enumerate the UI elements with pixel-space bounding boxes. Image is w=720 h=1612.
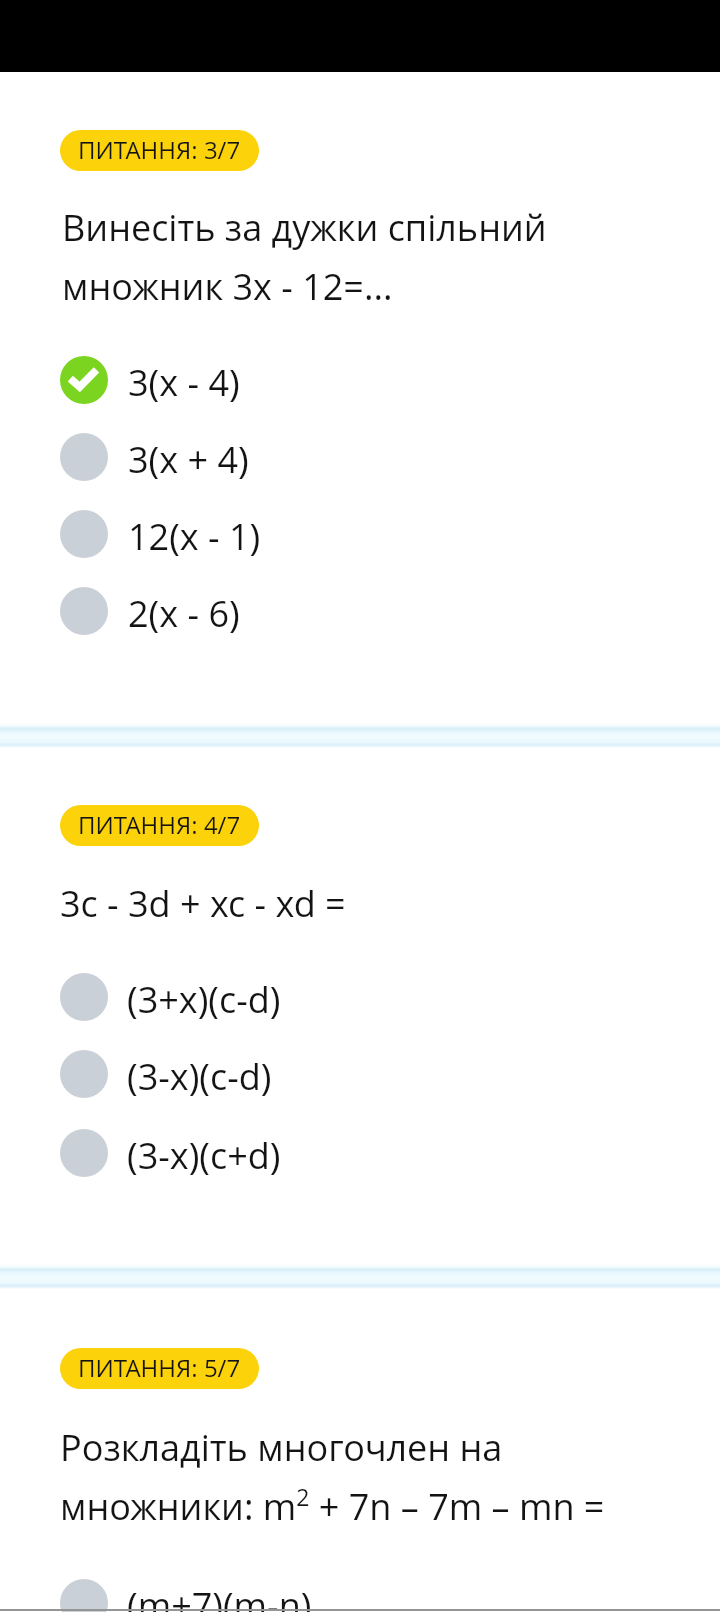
button[interactable]: Correct answer (0, 343, 720, 417)
staticText: ПИТАННЯ: 4/7 (78, 808, 241, 841)
staticText: ПИТАННЯ: 5/7 (78, 1351, 241, 1384)
staticText: Винесіть за дужки спільний множник 3x - … (62, 203, 562, 310)
other: Select answer (60, 510, 108, 558)
button[interactable]: Select answer (0, 420, 720, 494)
staticText: (3+x)(c-d) (127, 975, 281, 1024)
staticText: ПИТАННЯ: 3/7 (78, 133, 241, 166)
other: Select answer (60, 433, 108, 481)
other: Select answer (60, 1050, 108, 1098)
staticText: множники: m2 + 7n – 7m – mn = (60, 1481, 700, 1530)
button[interactable]: Select answer (0, 1116, 720, 1190)
staticText: Розкладіть многочлен на (60, 1423, 700, 1472)
button[interactable]: Select answer (0, 1037, 720, 1111)
staticText: 3c - 3d + xc - xd = (60, 879, 700, 928)
staticText: 3(x + 4) (128, 435, 249, 484)
staticText: (3-x)(c+d) (127, 1131, 281, 1180)
button[interactable]: Select answer (0, 574, 720, 648)
other: Select answer (60, 587, 108, 635)
button[interactable]: Select answer (0, 960, 720, 1034)
other: Select answer (60, 1129, 108, 1177)
staticText: (3-x)(c-d) (127, 1052, 272, 1101)
button[interactable]: ПИТАННЯ: 5/7 (60, 1348, 259, 1389)
staticText: (m+7)(m-n) (127, 1581, 312, 1612)
staticText: 12(x - 1) (128, 512, 261, 561)
other: Correct answer (60, 356, 108, 404)
button[interactable]: ПИТАННЯ: 4/7 (60, 805, 259, 846)
button[interactable]: Select answer (0, 497, 720, 571)
button[interactable]: ПИТАННЯ: 3/7 (60, 130, 259, 171)
button[interactable]: Select answer (0, 1566, 720, 1612)
other: Select answer (60, 1579, 108, 1612)
staticText: 3(x - 4) (128, 358, 240, 407)
other: Select answer (60, 973, 108, 1021)
staticText: 2(x - 6) (128, 589, 240, 638)
